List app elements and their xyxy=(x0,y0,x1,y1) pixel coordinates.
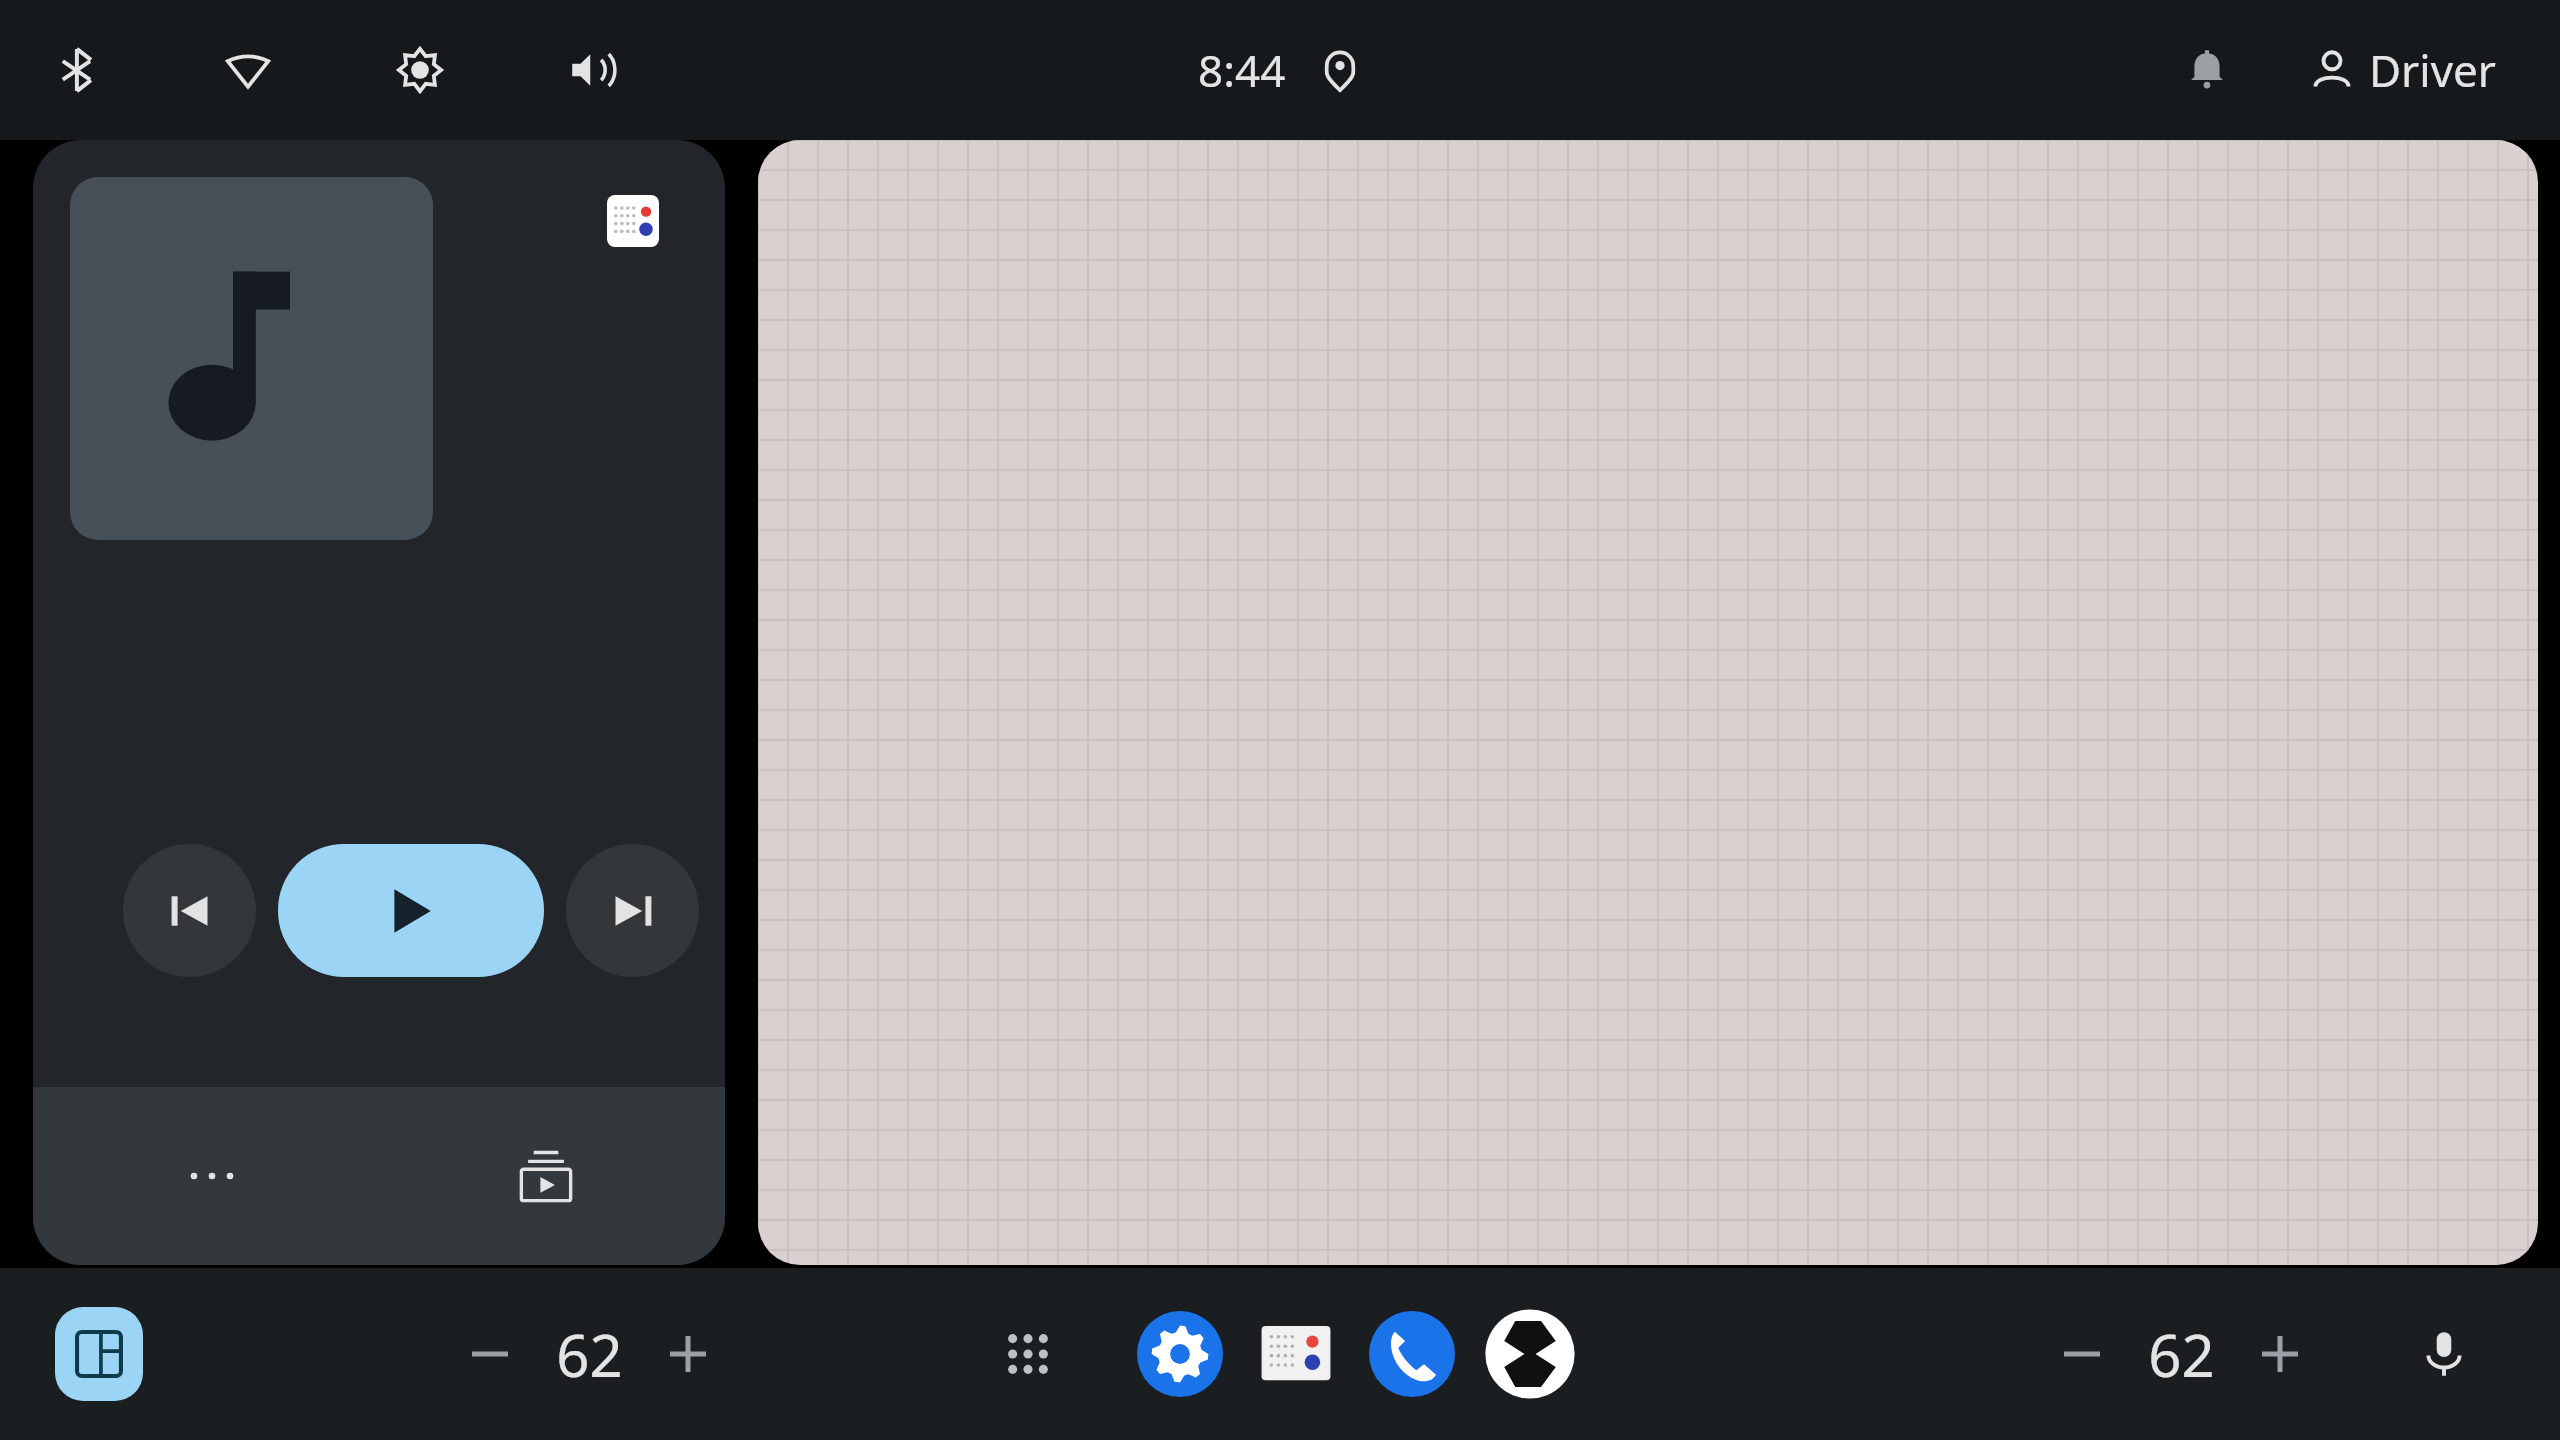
staticText: 62 xyxy=(2148,1315,2215,1394)
button[interactable]: Previous track xyxy=(123,844,256,977)
button[interactable]: Increase temperature xyxy=(648,1314,728,1394)
staticText: 8:44 xyxy=(1198,40,1286,100)
button[interactable]: Radio xyxy=(1250,1308,1342,1400)
staticText: 62 xyxy=(556,1315,623,1394)
button[interactable]: Navigation app xyxy=(1482,1306,1578,1402)
button[interactable]: Voice assistant xyxy=(2398,1308,2490,1400)
button[interactable]: Phone xyxy=(1366,1308,1458,1400)
button[interactable]: More options xyxy=(168,1132,256,1220)
button[interactable]: Map xyxy=(758,140,2538,1265)
button[interactable]: Brightness xyxy=(384,34,456,106)
button[interactable]: Increase temperature xyxy=(2240,1314,2320,1394)
button[interactable]: App layout xyxy=(55,1307,143,1401)
button[interactable]: Decrease temperature xyxy=(2042,1314,2122,1394)
other: Location xyxy=(1318,48,1362,92)
button[interactable]: Driver xyxy=(2305,40,2500,100)
button[interactable]: Decrease temperature xyxy=(450,1314,530,1394)
staticText: Driver xyxy=(2369,40,2496,100)
button[interactable]: Bluetooth xyxy=(40,34,112,106)
button[interactable]: Wi-Fi xyxy=(212,34,284,106)
button[interactable]: Settings xyxy=(1134,1308,1226,1400)
button[interactable]: Volume xyxy=(556,34,628,106)
button[interactable]: Media app xyxy=(607,195,659,247)
button[interactable]: Album art xyxy=(70,177,433,540)
button[interactable]: Notifications xyxy=(2175,38,2239,102)
button[interactable]: Queue xyxy=(502,1132,590,1220)
button[interactable]: Next track xyxy=(566,844,699,977)
button[interactable]: Play xyxy=(278,844,544,977)
button[interactable]: All apps xyxy=(982,1308,1074,1400)
